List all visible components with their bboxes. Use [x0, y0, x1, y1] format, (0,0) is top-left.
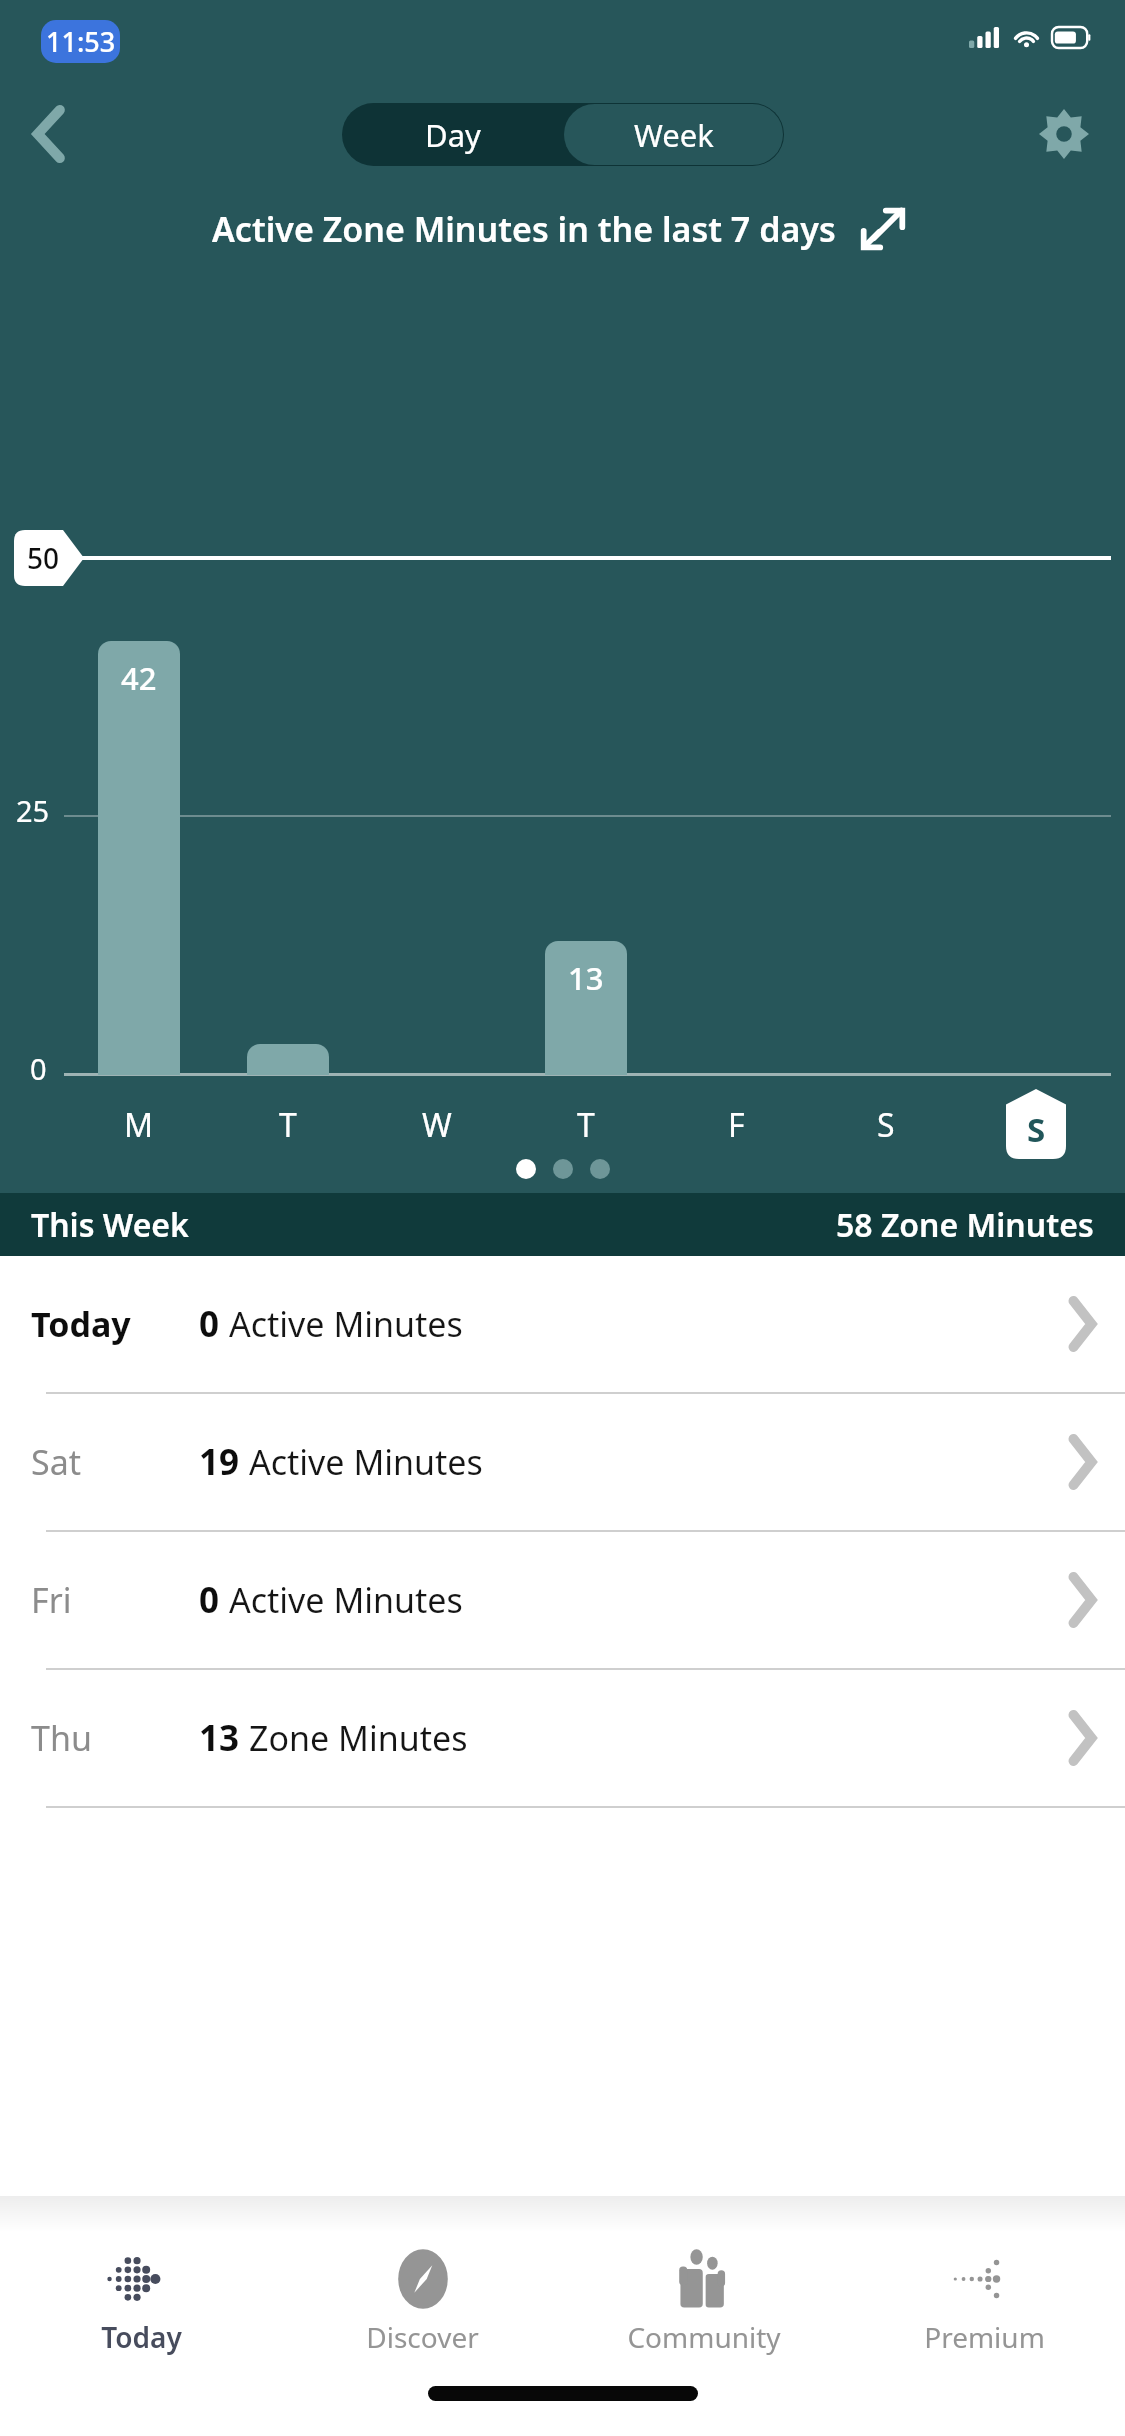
- staticText: 42: [121, 657, 157, 699]
- staticText: 58 Zone Minutes: [836, 1203, 1094, 1247]
- staticText: Zone Minutes: [249, 1715, 468, 1761]
- staticText: 25: [16, 791, 50, 830]
- staticText: 0: [30, 1049, 47, 1088]
- staticText: Fri: [31, 1577, 199, 1623]
- staticText: Thu: [31, 1715, 199, 1761]
- staticText: 19: [199, 1438, 240, 1486]
- staticText: 13: [199, 1714, 240, 1762]
- staticText: Active Minutes: [229, 1301, 463, 1347]
- button[interactable]: Today: [0, 1256, 1125, 1392]
- button[interactable]: Day: [342, 103, 563, 166]
- staticText: Sat: [31, 1439, 199, 1485]
- staticText: 13: [568, 957, 604, 999]
- button[interactable]: Sat: [0, 1394, 1125, 1530]
- staticText: Today: [101, 2318, 182, 2356]
- staticText: Community: [627, 2318, 781, 2356]
- staticText: M: [124, 1103, 154, 1147]
- button[interactable]: Fri: [0, 1532, 1125, 1668]
- staticText: Active Minutes: [229, 1577, 463, 1623]
- staticText: W: [422, 1103, 452, 1147]
- button[interactable]: Back: [8, 94, 88, 174]
- button[interactable]: Discover: [282, 2246, 563, 2356]
- staticText: T: [577, 1103, 595, 1147]
- staticText: Active Minutes: [249, 1439, 483, 1485]
- staticText: 11:53: [46, 23, 116, 60]
- staticText: F: [728, 1103, 745, 1147]
- staticText: Premium: [924, 2318, 1045, 2356]
- button[interactable]: Community: [563, 2246, 844, 2356]
- staticText: Week: [634, 114, 714, 156]
- staticText: Discover: [366, 2318, 479, 2356]
- button[interactable]: Premium: [844, 2246, 1125, 2356]
- button[interactable]: Week: [564, 104, 783, 165]
- staticText: This Week: [31, 1203, 189, 1247]
- staticText: S: [1027, 1107, 1046, 1152]
- staticText: Today: [31, 1301, 199, 1347]
- button[interactable]: Today: [0, 2246, 282, 2356]
- staticText: 50: [27, 539, 60, 577]
- staticText: Day: [425, 114, 481, 156]
- button[interactable]: Expand chart: [852, 198, 914, 260]
- button[interactable]: Settings: [1023, 93, 1105, 175]
- staticText: 0: [199, 1576, 220, 1624]
- staticText: T: [279, 1103, 297, 1147]
- button[interactable]: Thu: [0, 1670, 1125, 1806]
- staticText: Active Zone Minutes in the last 7 days: [212, 206, 836, 252]
- staticText: S: [877, 1103, 895, 1147]
- staticText: 0: [199, 1300, 220, 1348]
